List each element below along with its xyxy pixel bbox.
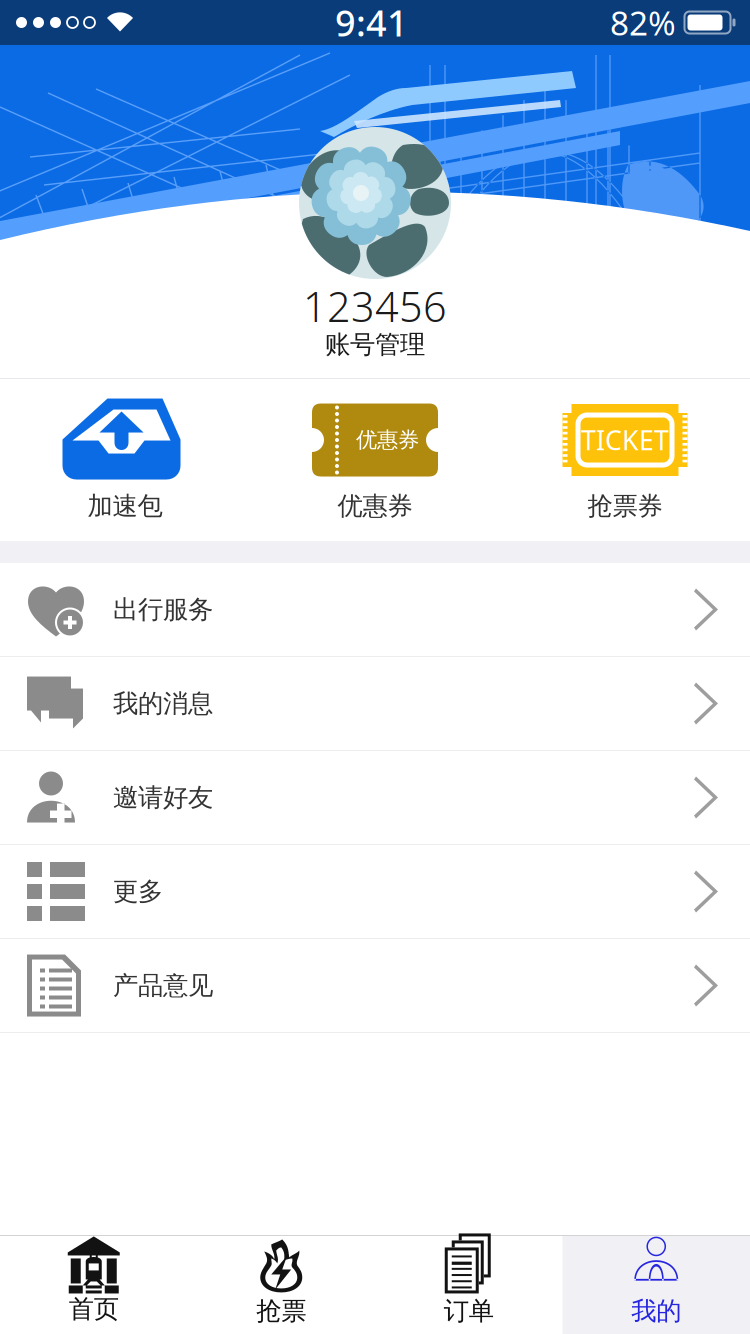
staticText: 订单 (444, 1295, 494, 1326)
button[interactable]: TICKET (500, 379, 750, 541)
button[interactable]: 我的消息 (0, 657, 750, 750)
staticText: 加速包 (87, 490, 162, 521)
staticText: 优惠券 (356, 427, 419, 453)
staticText: 更多 (113, 876, 163, 907)
staticText: 123456 (303, 279, 447, 333)
staticText: 抢票券 (587, 490, 662, 521)
staticText: 产品意见 (113, 970, 213, 1001)
staticText: 优惠券 (337, 490, 412, 521)
button[interactable]: 首页 (0, 1236, 187, 1334)
button[interactable]: 出行服务 (0, 563, 750, 656)
button[interactable]: 邀请好友 (0, 751, 750, 844)
button[interactable]: 抢票 (187, 1236, 375, 1334)
button[interactable]: 优惠券 (250, 379, 500, 541)
button[interactable]: 订单 (375, 1236, 562, 1334)
button[interactable]: 123456 (303, 284, 447, 361)
staticText: TICKET (581, 422, 669, 458)
staticText: 邀请好友 (113, 782, 213, 813)
button[interactable]: 更多 (0, 845, 750, 938)
staticText: 首页 (69, 1293, 119, 1324)
button[interactable]: 我的 (562, 1236, 750, 1334)
staticText: 抢票 (256, 1295, 306, 1326)
staticText: 我的消息 (113, 688, 213, 719)
staticText: 82% (610, 0, 676, 45)
button[interactable]: 加速包 (0, 379, 250, 541)
staticText: 我的 (631, 1295, 681, 1326)
staticText: 出行服务 (113, 594, 213, 625)
staticText: 9:41 (335, 0, 408, 46)
staticText: 账号管理 (325, 329, 425, 360)
button[interactable]: 产品意见 (0, 939, 750, 1032)
